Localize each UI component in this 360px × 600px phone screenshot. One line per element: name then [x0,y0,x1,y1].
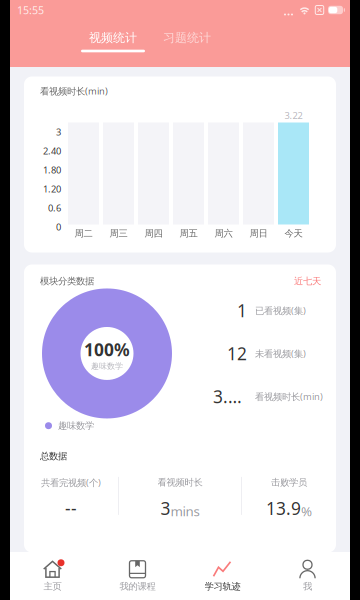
button[interactable]: 学习轨迹 [180,552,265,600]
staticText: 100% [84,338,130,361]
staticText: 看视频时长 [157,477,202,488]
staticText: 15:55 [17,3,44,17]
staticText: 周日 [249,228,267,239]
staticText: 总数据 [40,450,67,462]
button[interactable]: 我的课程 [95,552,180,600]
staticText: 12 [227,342,247,365]
staticText: 模块分类数据 [40,275,94,287]
staticText: 学习轨迹 [204,581,240,592]
staticText: 看视频时长(min) [40,85,108,97]
staticText: 1 [237,299,247,322]
staticText: 趣味数学 [91,361,123,371]
staticText: 我 [303,581,312,592]
staticText: 1.80 [43,164,61,176]
staticText: 3 [160,497,170,520]
staticText: 已看视频(集) [255,304,306,317]
staticText: 3.22 [213,385,247,408]
staticText: 近七天 [294,275,321,287]
staticText: mins [170,502,199,520]
staticText: 今天 [284,228,302,239]
button[interactable]: 我 [265,552,350,600]
staticText: 1.20 [43,183,61,195]
staticText: 0.6 [48,202,61,214]
staticText: 周五 [179,228,197,239]
staticText: 13.9 [266,497,301,520]
staticText: 未看视频(集) [255,347,306,360]
staticText: 周三 [109,228,127,239]
staticText: 击败学员 [271,477,307,488]
button[interactable]: 习题统计 [154,29,220,53]
button[interactable]: 视频统计 [80,29,146,53]
staticText: 共看完视频(个) [41,476,101,489]
staticText: 视频统计 [89,30,137,45]
staticText: 2.40 [43,145,61,157]
button[interactable]: 主页 [10,552,95,600]
staticText: 看视频时长(min) [255,390,323,403]
staticText: 趣味数学 [58,420,94,431]
staticText: 习题统计 [163,30,211,45]
staticText: 0 [56,221,61,233]
staticText: 3.22 [284,109,302,122]
staticText: 主页 [43,581,61,592]
staticText: 3 [56,126,61,138]
button[interactable]: 近七天 [294,275,321,287]
staticText: 周四 [144,228,162,239]
staticText: % [301,502,312,520]
staticText: -- [65,497,77,520]
staticText: 周六 [214,228,232,239]
staticText: 周二 [74,228,92,239]
staticText: 我的课程 [119,581,155,592]
